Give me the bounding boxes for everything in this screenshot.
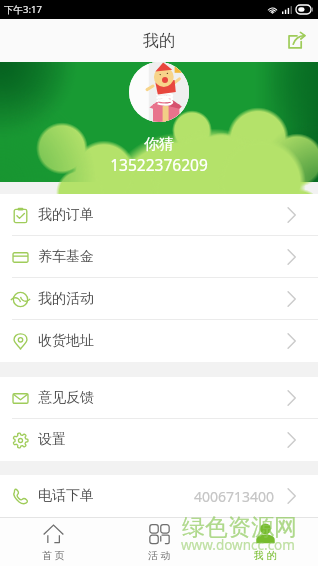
staticText: 首 页 [42, 548, 65, 562]
staticText: 收货地址 [38, 332, 94, 350]
button[interactable]: 收货地址 [0, 320, 318, 362]
staticText: 我的活动 [38, 290, 94, 308]
staticText: 电话下单 [38, 487, 94, 505]
button[interactable]: 意见反馈 [0, 377, 318, 419]
staticText: 我的 [143, 31, 175, 51]
staticText: www.downcc.com [181, 536, 295, 554]
button[interactable]: 养车基金 [0, 236, 318, 278]
staticText: 绿色资源网 [182, 513, 297, 542]
staticText: 4006713400 [194, 487, 275, 506]
button[interactable]: 设置 [0, 419, 318, 461]
button[interactable]: Share [279, 25, 311, 57]
button[interactable]: 我的活动 [0, 278, 318, 320]
button[interactable]: 首 页 [0, 518, 106, 566]
staticText: 下午3:17 [4, 3, 42, 16]
staticText: 设置 [38, 431, 66, 449]
staticText: 我的订单 [38, 206, 94, 224]
staticText: 你猜 [144, 135, 174, 154]
staticText: 意见反馈 [38, 389, 94, 407]
staticText: 活 动 [148, 548, 171, 562]
button[interactable]: 活 动 [106, 518, 212, 566]
staticText: 养车基金 [38, 248, 94, 266]
button[interactable]: 我 的 [212, 518, 318, 566]
staticText: 13522376209 [110, 154, 208, 175]
staticText: 我 的 [254, 548, 277, 562]
button[interactable]: 电话下单 [0, 475, 318, 517]
button[interactable]: Avatar [129, 62, 189, 122]
button[interactable]: 我的订单 [0, 194, 318, 236]
